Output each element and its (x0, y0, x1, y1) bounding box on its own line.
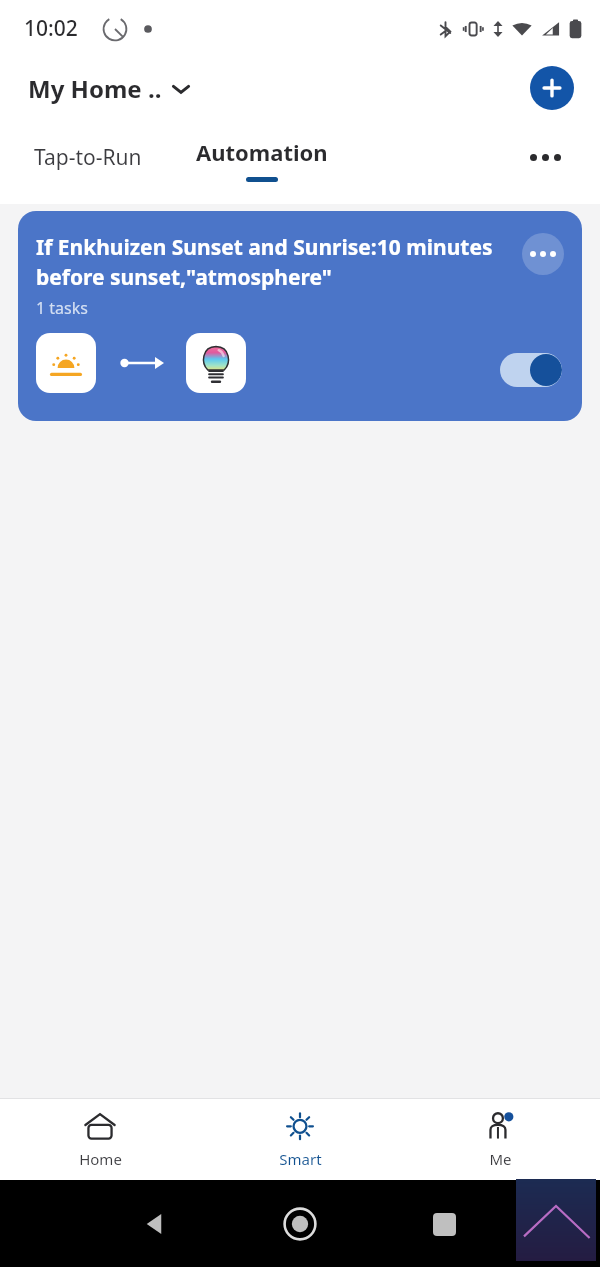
button[interactable]: Home (0, 1106, 200, 1173)
button[interactable]: Automation options (522, 233, 564, 275)
staticText: My Home .. (28, 72, 162, 105)
button[interactable]: Recents (422, 1202, 466, 1246)
button[interactable]: Home (276, 1200, 324, 1248)
staticText: Home (79, 1149, 122, 1169)
button[interactable]: Back (132, 1202, 176, 1246)
staticText: Automation (196, 137, 328, 167)
staticText: Me (489, 1149, 512, 1169)
button[interactable]: Smart (200, 1106, 400, 1173)
button[interactable]: Tap-to-Run (28, 135, 148, 180)
button[interactable]: Automation (190, 133, 334, 186)
button[interactable]: If Enkhuizen Sunset and Sunrise:10 minut… (18, 211, 582, 421)
staticText: If Enkhuizen Sunset and Sunrise:10 minut… (36, 233, 506, 291)
staticText: 1 tasks (36, 297, 88, 319)
staticText: Smart (279, 1149, 322, 1169)
button[interactable]: My Home .. (26, 66, 192, 111)
staticText: 10:02 (24, 14, 78, 43)
button[interactable]: Toggle automation (500, 353, 562, 387)
staticText: Tap-to-Run (34, 143, 142, 172)
button[interactable]: Add (530, 66, 574, 110)
button[interactable]: Me (400, 1106, 600, 1173)
button[interactable]: More options (520, 132, 570, 182)
